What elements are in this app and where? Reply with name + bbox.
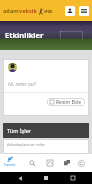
button[interactable]: WhatsApp [75, 157, 88, 169]
staticText: Tweetle [4, 163, 16, 167]
staticText: Ali, neler var? [8, 81, 37, 87]
staticText: Resim Ekle [56, 99, 82, 106]
staticText: veksik [19, 7, 37, 15]
button[interactable]: Home [39, 172, 53, 184]
staticText: adam [3, 7, 19, 15]
button[interactable]: Reload [43, 157, 56, 169]
staticText: Tüm İşler [7, 127, 32, 134]
button[interactable]: Back [13, 172, 27, 184]
button[interactable]: Tweetle [2, 156, 18, 167]
button[interactable]: Recents [66, 172, 80, 184]
staticText: SPOR [44, 10, 53, 14]
button[interactable]: Profile [65, 6, 75, 16]
button[interactable]: adam [3, 7, 53, 15]
button[interactable]: Menu [79, 6, 89, 16]
staticText: Etkinlikler [5, 30, 44, 40]
button[interactable]: Tüm İşler [3, 123, 89, 138]
button[interactable]: Search [26, 157, 39, 169]
button[interactable]: Resim Ekle [47, 98, 85, 106]
button[interactable]: Copy [60, 157, 73, 169]
staticText: Arkadaşlarının neler [7, 142, 45, 147]
